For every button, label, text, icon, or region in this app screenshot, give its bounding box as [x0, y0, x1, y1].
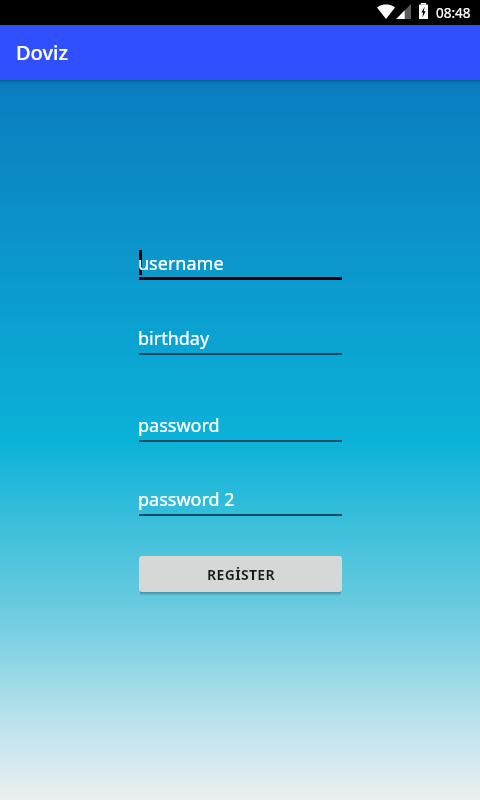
staticText: REGİSTER	[207, 565, 275, 584]
button[interactable]: password 2	[139, 483, 342, 516]
staticText: birthday	[138, 326, 210, 351]
staticText: 08:48	[436, 4, 471, 22]
button[interactable]: REGİSTER	[139, 556, 342, 592]
staticText: username	[138, 251, 224, 276]
button[interactable]: password	[139, 409, 342, 442]
other: Battery charging	[419, 3, 428, 19]
staticText: password 2	[138, 487, 235, 512]
staticText: password	[138, 413, 220, 438]
other: Wi-Fi signal	[377, 4, 395, 19]
staticText: Doviz	[16, 39, 68, 66]
button[interactable]: birthday	[139, 322, 342, 355]
button[interactable]: username	[139, 247, 342, 280]
other: Mobile signal strength	[396, 4, 411, 19]
